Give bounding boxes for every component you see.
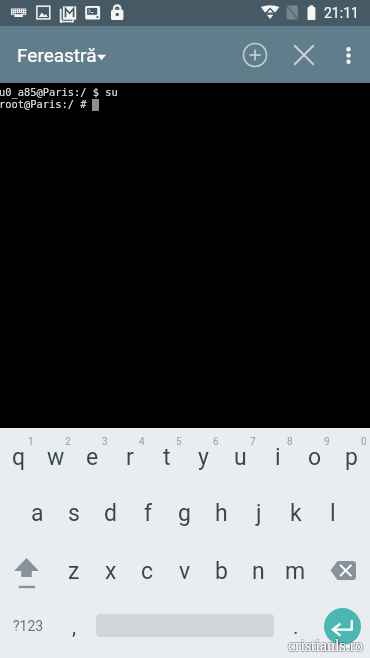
button[interactable]: n <box>240 544 277 602</box>
button[interactable]: Space <box>96 602 274 658</box>
button[interactable]: v <box>166 544 203 602</box>
staticText: 5 <box>176 436 182 448</box>
button[interactable]: 9 <box>296 428 333 486</box>
button[interactable]: x <box>92 544 129 602</box>
staticText: z <box>68 558 80 585</box>
staticText: ?123 <box>13 618 44 634</box>
staticText: 9 <box>324 436 330 448</box>
staticText: u <box>234 444 247 471</box>
staticText: 0 <box>361 436 367 448</box>
button[interactable]: Close session <box>280 31 328 79</box>
staticText: a <box>31 500 44 527</box>
staticText: cristianls.ro <box>289 636 365 654</box>
button[interactable]: s <box>55 486 92 544</box>
staticText: l <box>330 500 336 527</box>
button[interactable]: 6 <box>185 428 222 486</box>
button[interactable]: j <box>240 486 277 544</box>
staticText: i <box>275 444 281 471</box>
button[interactable]: m <box>277 544 314 602</box>
staticText: cristianls.ro <box>288 637 364 655</box>
staticText: t <box>163 444 171 471</box>
staticText: w <box>47 444 65 471</box>
staticText: s <box>68 500 80 527</box>
staticText: root@Paris:/ # <box>0 98 87 110</box>
staticText: cristianls.ro <box>287 638 363 656</box>
staticText: b <box>215 558 228 585</box>
button[interactable]: g <box>166 486 203 544</box>
button[interactable]: New session <box>231 31 279 79</box>
button[interactable]: d <box>92 486 129 544</box>
staticText: 7 <box>250 436 256 448</box>
staticText: 8 <box>287 436 293 448</box>
button[interactable]: f <box>129 486 166 544</box>
staticText: o <box>308 444 322 471</box>
staticText: h <box>215 500 228 527</box>
button[interactable]: c <box>129 544 166 602</box>
button[interactable]: z <box>56 544 92 602</box>
button[interactable]: 1 <box>0 428 37 486</box>
staticText: u0_a85@Paris:/ $ su <box>0 86 118 98</box>
button[interactable]: 0 <box>333 428 370 486</box>
staticText: cristianls.ro <box>289 637 365 655</box>
button[interactable]: k <box>277 486 314 544</box>
staticText: , <box>72 615 77 640</box>
staticText: k <box>290 500 302 527</box>
button[interactable]: 7 <box>222 428 259 486</box>
button[interactable]: h <box>203 486 240 544</box>
button[interactable]: ?123 <box>0 602 56 658</box>
button[interactable]: 2 <box>37 428 74 486</box>
button[interactable]: l <box>314 486 351 544</box>
staticText: cristianls.ro <box>289 638 365 656</box>
button[interactable]: Backspace <box>314 544 370 602</box>
staticText: c <box>141 558 154 585</box>
staticText: cristianls.ro <box>288 638 364 656</box>
button[interactable]: b <box>203 544 240 602</box>
staticText: j <box>256 500 262 527</box>
staticText: e <box>86 444 99 471</box>
staticText: 3 <box>102 436 108 448</box>
staticText: 4 <box>139 436 145 448</box>
button[interactable]: a <box>19 486 55 544</box>
staticText: . <box>293 615 299 640</box>
staticText: m <box>285 558 306 585</box>
button[interactable]: 4 <box>111 428 148 486</box>
staticText: p <box>345 444 358 471</box>
button[interactable]: 3 <box>74 428 111 486</box>
button[interactable]: . <box>274 602 314 658</box>
staticText: cristianls.ro <box>288 636 364 654</box>
button[interactable]: Fereastră <box>0 26 118 83</box>
button[interactable]: 8 <box>259 428 296 486</box>
button[interactable]: Enter <box>314 602 370 658</box>
staticText: cristianls.ro <box>287 637 363 655</box>
button[interactable]: , <box>56 602 97 658</box>
staticText: r <box>126 444 134 471</box>
staticText: n <box>252 558 265 585</box>
staticText: x <box>105 558 117 585</box>
staticText: q <box>12 444 26 471</box>
staticText: g <box>178 500 191 527</box>
staticText: Fereastră <box>17 44 97 66</box>
staticText: y <box>198 444 209 471</box>
staticText: d <box>104 500 117 527</box>
staticText: 21:11 <box>324 5 359 21</box>
staticText: cristianls.ro <box>287 636 363 654</box>
button[interactable]: Shift <box>0 544 56 602</box>
staticText: f <box>144 500 152 527</box>
staticText: 6 <box>213 436 219 448</box>
staticText: v <box>179 558 191 585</box>
staticText: 2 <box>65 436 71 448</box>
staticText: 1 <box>28 436 34 448</box>
button[interactable]: 5 <box>148 428 185 486</box>
button[interactable]: More options <box>324 31 370 79</box>
